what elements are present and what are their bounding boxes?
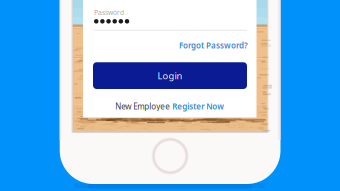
button[interactable]: Login xyxy=(93,62,247,89)
staticText: New Employee xyxy=(115,101,172,112)
button[interactable]: Register Now xyxy=(172,101,224,112)
staticText: Login xyxy=(157,69,182,82)
staticText: Password xyxy=(94,8,124,17)
staticText: Register Now xyxy=(172,101,224,112)
staticText: Forgot Password? xyxy=(179,40,248,51)
button[interactable]: Forgot Password? xyxy=(179,40,248,51)
